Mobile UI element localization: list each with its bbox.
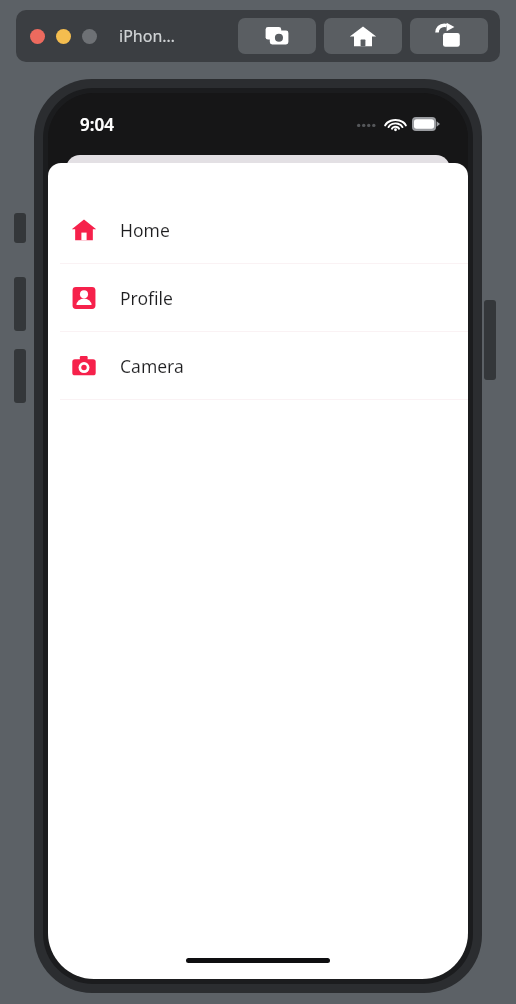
button[interactable]: Screenshot: [238, 18, 316, 54]
button[interactable]: Camera: [48, 332, 468, 399]
staticText: Profile: [120, 286, 173, 310]
button[interactable]: Rotate: [410, 18, 488, 54]
staticText: Camera: [120, 354, 184, 378]
staticText: 9:04: [80, 113, 114, 136]
staticText: iPhon…: [119, 25, 175, 47]
button[interactable]: Home: [324, 18, 402, 54]
button[interactable]: Home: [48, 196, 468, 263]
button[interactable]: Profile: [48, 264, 468, 331]
staticText: Home: [120, 218, 170, 242]
